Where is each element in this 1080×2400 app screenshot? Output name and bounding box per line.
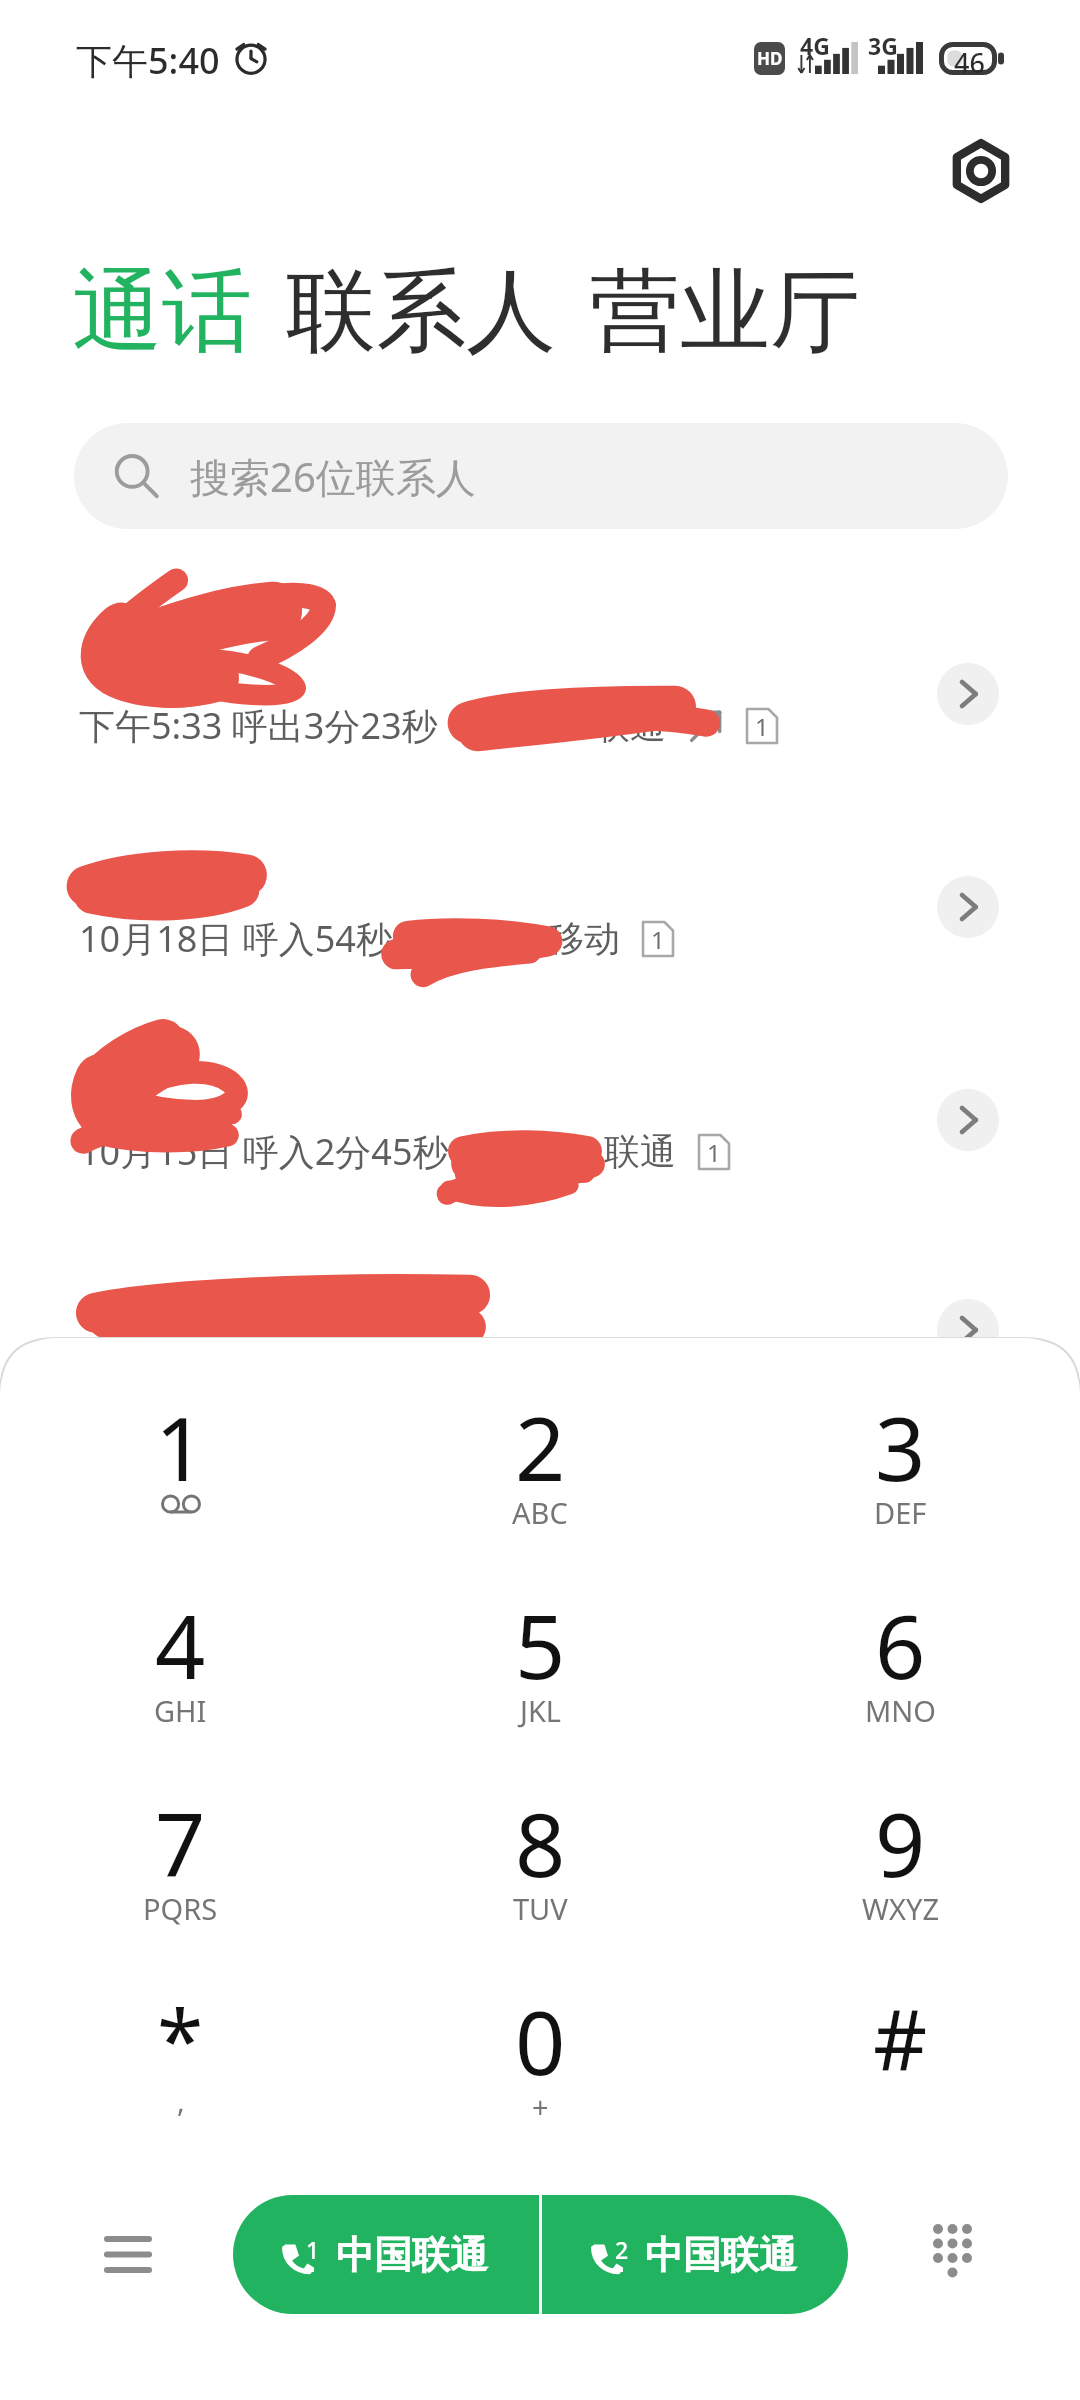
staticText: 2 [615, 2234, 629, 2265]
button[interactable]: Call details [937, 1299, 999, 1361]
staticText: 联系人 [286, 255, 556, 368]
button[interactable]: Dialpad [912, 2209, 992, 2289]
staticText: 4G [800, 30, 830, 61]
staticText: GHI [154, 1691, 207, 1730]
button[interactable]: Call details [937, 876, 999, 938]
staticText: 下午5:40 [76, 36, 220, 85]
button[interactable] [0, 801, 1080, 1013]
staticText: WXYZ [862, 1889, 939, 1928]
staticText: DEF [874, 1493, 927, 1532]
staticText: # [873, 1981, 928, 2095]
staticText: + [532, 2087, 549, 2126]
button[interactable]: Settings [937, 127, 1025, 215]
button[interactable]: 搜索26位联系人 [74, 423, 1008, 529]
button[interactable]: 3 [780, 1387, 1020, 1565]
staticText: 1 [755, 710, 769, 743]
staticText: * [157, 1981, 204, 2095]
staticText: 1 [707, 1136, 721, 1169]
button[interactable]: # [780, 1981, 1020, 2159]
button[interactable] [0, 1014, 1080, 1226]
button[interactable]: 1 [60, 1387, 300, 1565]
staticText: 3 [875, 1387, 926, 1507]
staticText: MNO [865, 1691, 936, 1730]
staticText: 联通 [604, 1129, 676, 1174]
button[interactable]: 7 [60, 1783, 300, 1961]
staticText: PQRS [143, 1889, 218, 1928]
staticText: , [177, 2081, 185, 2120]
staticText: HD [757, 47, 783, 70]
staticText: 搜索26位联系人 [190, 449, 476, 504]
button[interactable]: Call details [937, 1089, 999, 1151]
button[interactable]: 1 [233, 2195, 539, 2314]
staticText: 1 [155, 1387, 206, 1507]
staticText: 10月18日 呼入54秒 [79, 914, 392, 963]
staticText: 0 [515, 1981, 566, 2101]
button[interactable]: 2 [542, 2195, 848, 2314]
button[interactable]: 通话 [72, 255, 252, 368]
button[interactable]: 8 [420, 1783, 660, 1961]
button[interactable]: 4 [60, 1585, 300, 1763]
button[interactable]: 6 [780, 1585, 1020, 1763]
staticText: 9 [875, 1783, 926, 1903]
button[interactable]: 营业厅 [590, 255, 860, 368]
button[interactable]: 5 [420, 1585, 660, 1763]
staticText: 5 [515, 1585, 566, 1705]
staticText: 7 [155, 1783, 206, 1903]
staticText: 2 [515, 1387, 566, 1507]
staticText: ABC [512, 1493, 568, 1532]
staticText: 6 [875, 1585, 926, 1705]
staticText: 4 [155, 1585, 206, 1705]
button[interactable]: 2 [420, 1387, 660, 1565]
staticText: 营业厅 [590, 255, 860, 368]
staticText: 1 [651, 923, 665, 956]
button[interactable]: 0 [420, 1981, 660, 2159]
staticText: 下午5:33 呼出3分23秒 [79, 701, 438, 750]
staticText: 46 [954, 44, 985, 81]
staticText: 通话 [72, 255, 252, 368]
staticText: 中国联通 [336, 2231, 488, 2279]
staticText: 联通 [594, 703, 666, 748]
button[interactable] [0, 588, 1080, 800]
button[interactable] [0, 1224, 1080, 1436]
button[interactable]: 联系人 [286, 255, 556, 368]
staticText: 10月15日 呼入2分45秒 [79, 1127, 449, 1176]
staticText: JKL [520, 1691, 562, 1730]
staticText: 8 [515, 1783, 566, 1903]
staticText: 3G [868, 30, 898, 61]
button[interactable]: Menu [88, 2214, 168, 2294]
button[interactable]: * [60, 1981, 300, 2159]
button[interactable]: Call details [937, 663, 999, 725]
staticText: 中国联通 [645, 2231, 797, 2279]
staticText: 移动 [548, 916, 620, 961]
staticText: TUV [513, 1889, 568, 1928]
button[interactable]: 9 [780, 1783, 1020, 1961]
staticText: 1 [306, 2234, 320, 2265]
